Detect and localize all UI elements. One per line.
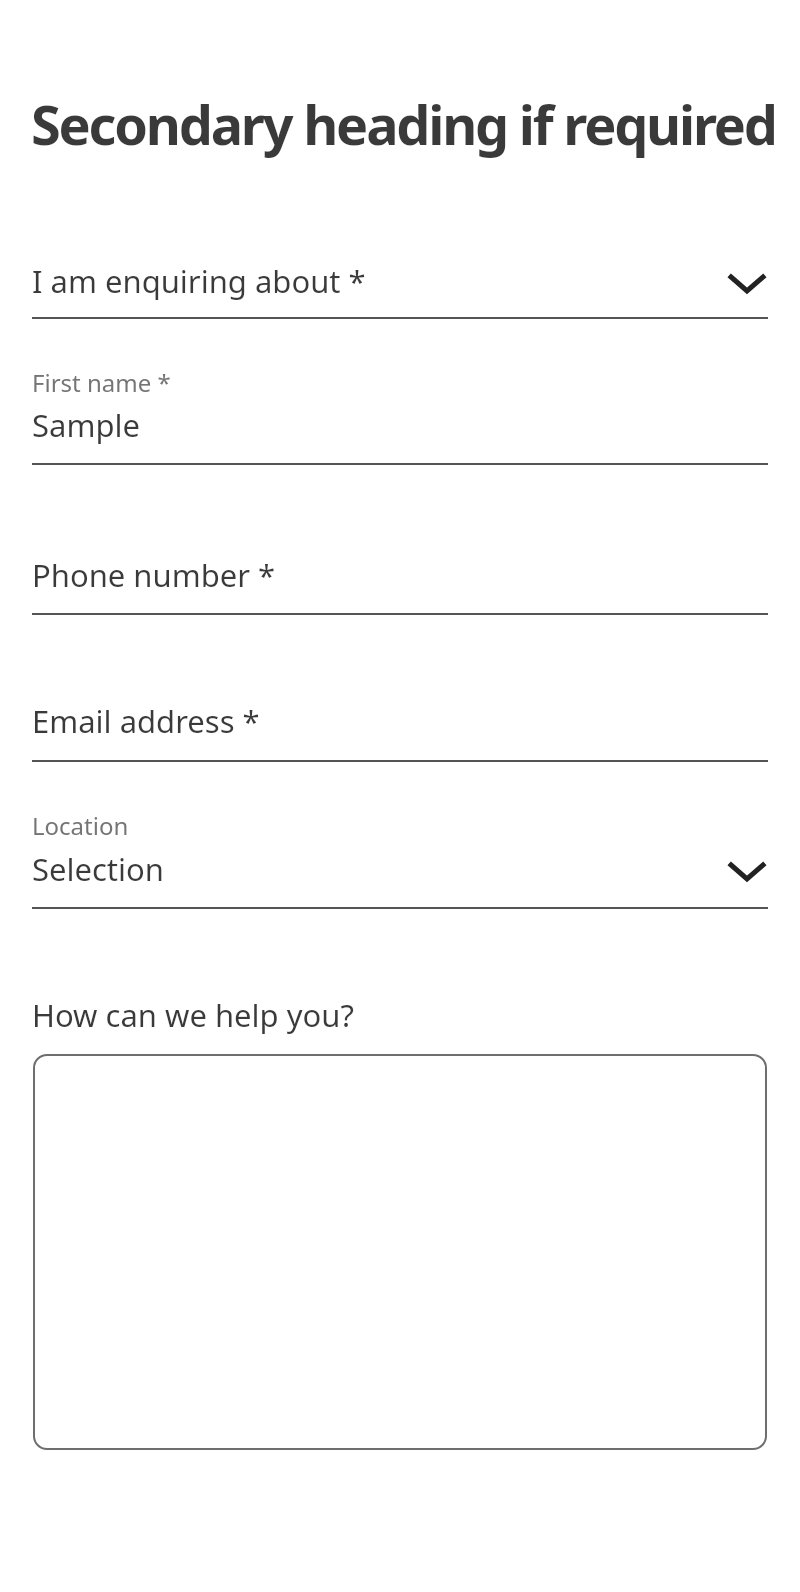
staticText: I am enquiring about * [32,260,366,302]
staticText: Phone number * [32,554,276,596]
staticText: Secondary heading if required [31,87,776,161]
button[interactable]: Location [32,808,768,907]
staticText: Selection [32,848,164,890]
button[interactable] [33,1054,767,1450]
button[interactable]: First name * [32,366,768,465]
button[interactable]: Email address * [32,697,768,762]
button[interactable]: Phone number * [32,550,768,615]
staticText: Email address * [32,700,260,742]
button[interactable]: I am enquiring about * [32,250,768,320]
staticText: First name * [32,366,171,399]
staticText: How can we help you? [32,994,354,1036]
staticText: Sample [32,404,140,446]
staticText: Location [32,809,129,842]
